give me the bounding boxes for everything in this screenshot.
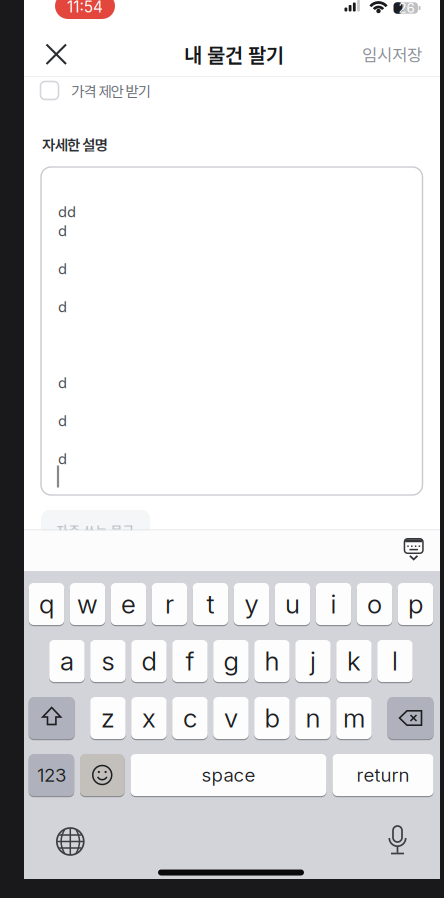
staticText: d bbox=[58, 450, 67, 468]
staticText: q bbox=[39, 588, 54, 620]
button[interactable]: 임시저장 bbox=[344, 37, 440, 71]
staticText: 내 물건 팔기 bbox=[184, 39, 284, 68]
staticText: d bbox=[58, 260, 67, 278]
button[interactable] bbox=[35, 75, 175, 105]
button[interactable]: y bbox=[234, 583, 269, 625]
staticText: 자주 쓰는 문구 bbox=[56, 521, 134, 539]
staticText: m bbox=[343, 702, 365, 734]
button[interactable]: p bbox=[398, 583, 433, 625]
button[interactable] bbox=[48, 821, 92, 861]
staticText: j bbox=[310, 645, 316, 677]
button[interactable]: m bbox=[336, 697, 372, 739]
button[interactable] bbox=[39, 37, 73, 71]
staticText: b bbox=[264, 702, 279, 734]
button[interactable]: b bbox=[254, 697, 290, 739]
button[interactable] bbox=[387, 697, 433, 739]
staticText: d bbox=[58, 412, 67, 430]
staticText: l bbox=[392, 645, 398, 677]
staticText: 자세한 설명 bbox=[42, 133, 107, 155]
button[interactable]: q bbox=[29, 583, 64, 625]
button[interactable] bbox=[29, 697, 75, 739]
staticText: d bbox=[58, 374, 67, 392]
staticText: w bbox=[77, 588, 98, 620]
button[interactable]: g bbox=[213, 640, 249, 682]
button[interactable]: j bbox=[295, 640, 331, 682]
staticText: 26 bbox=[398, 0, 414, 16]
staticText: p bbox=[408, 588, 423, 620]
staticText: 임시저장 bbox=[362, 42, 422, 66]
button[interactable]: i bbox=[316, 583, 351, 625]
button[interactable] bbox=[80, 754, 124, 796]
staticText: e bbox=[121, 588, 136, 620]
button[interactable]: v bbox=[213, 697, 249, 739]
staticText: v bbox=[224, 702, 238, 734]
button[interactable]: 자주 쓰는 문구 bbox=[41, 510, 150, 550]
staticText: z bbox=[101, 702, 115, 734]
staticText: f bbox=[185, 645, 194, 677]
staticText: a bbox=[60, 645, 74, 677]
staticText: h bbox=[264, 645, 279, 677]
button[interactable]: return bbox=[332, 754, 433, 796]
staticText: u bbox=[285, 588, 300, 620]
button[interactable]: 123 bbox=[29, 754, 74, 796]
button[interactable]: s bbox=[90, 640, 126, 682]
staticText: r bbox=[165, 588, 174, 620]
button[interactable]: n bbox=[295, 697, 331, 739]
staticText: d bbox=[58, 298, 67, 316]
staticText: d bbox=[141, 645, 156, 677]
staticText: return bbox=[356, 764, 409, 786]
button[interactable]: t bbox=[193, 583, 228, 625]
staticText: d bbox=[58, 222, 67, 240]
button[interactable]: space bbox=[130, 754, 326, 796]
staticText: k bbox=[347, 645, 361, 677]
button[interactable] bbox=[375, 820, 419, 860]
staticText: dd bbox=[58, 203, 76, 221]
staticText: i bbox=[330, 588, 336, 620]
button[interactable]: l bbox=[377, 640, 413, 682]
button[interactable]: o bbox=[357, 583, 392, 625]
button[interactable]: c bbox=[172, 697, 208, 739]
button[interactable]: z bbox=[90, 697, 126, 739]
staticText: 123 bbox=[37, 764, 66, 786]
button[interactable]: u bbox=[275, 583, 310, 625]
button[interactable]: w bbox=[70, 583, 105, 625]
button[interactable]: d bbox=[131, 640, 167, 682]
button[interactable]: f bbox=[172, 640, 208, 682]
button[interactable]: x bbox=[131, 697, 167, 739]
staticText: space bbox=[201, 764, 255, 786]
button[interactable] bbox=[397, 533, 431, 565]
button[interactable]: a bbox=[49, 640, 85, 682]
button[interactable]: h bbox=[254, 640, 290, 682]
staticText: g bbox=[223, 645, 238, 677]
staticText: x bbox=[142, 702, 156, 734]
staticText: c bbox=[183, 702, 197, 734]
button[interactable]: k bbox=[336, 640, 372, 682]
button[interactable]: r bbox=[152, 583, 187, 625]
staticText: 가격 제안 받기 bbox=[71, 80, 151, 101]
staticText: n bbox=[305, 702, 320, 734]
staticText: 11:54 bbox=[67, 0, 103, 16]
staticText: s bbox=[101, 645, 114, 677]
staticText: t bbox=[206, 588, 214, 620]
button[interactable]: e bbox=[111, 583, 146, 625]
staticText: o bbox=[367, 588, 382, 620]
staticText: y bbox=[244, 588, 258, 620]
